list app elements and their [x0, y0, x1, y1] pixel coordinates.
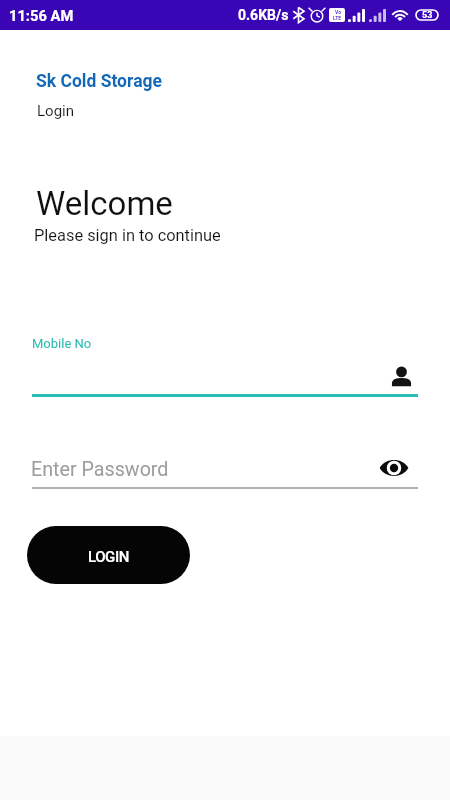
staticText: Sk Cold Storage [36, 71, 162, 92]
staticText: 0.6KB/s [238, 7, 289, 23]
button[interactable]: Mobile No [32, 334, 418, 397]
staticText: Welcome [36, 184, 173, 223]
other: Mobile number [390, 365, 413, 388]
staticText: LOGIN [88, 548, 129, 566]
staticText: 53 [422, 10, 433, 21]
staticText: Please sign in to continue [34, 226, 221, 245]
staticText: Enter Password [31, 458, 169, 481]
staticText: Vo [335, 9, 341, 15]
staticText: 11:56 AM [9, 7, 74, 24]
staticText: LTE [333, 15, 342, 21]
staticText: Mobile No [32, 336, 92, 351]
button[interactable]: Enter Password [32, 450, 418, 489]
staticText: Login [37, 102, 74, 120]
button[interactable]: LOGIN [27, 526, 190, 584]
button[interactable]: Show password [348, 450, 418, 486]
